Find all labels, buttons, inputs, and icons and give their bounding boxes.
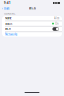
button[interactable]: Networks — [2, 32, 62, 37]
staticText: ‹ Back — [2, 7, 9, 10]
button[interactable]: ‹ Back — [0, 6, 9, 11]
button[interactable]: Status — [2, 21, 62, 26]
staticText: On — [54, 22, 59, 25]
staticText: 9:41 — [4, 1, 11, 5]
staticText: GENERAL — [4, 12, 15, 15]
staticText: Networks — [5, 33, 17, 36]
button[interactable]: Wi-Fi — [2, 27, 62, 31]
staticText: Wi-Fi — [29, 7, 36, 10]
staticText: Wi-Fi — [5, 27, 11, 31]
staticText: Name — [5, 16, 12, 20]
staticText: Status — [5, 22, 12, 25]
staticText: Alex — [54, 16, 59, 20]
button[interactable]: Name — [2, 16, 62, 20]
